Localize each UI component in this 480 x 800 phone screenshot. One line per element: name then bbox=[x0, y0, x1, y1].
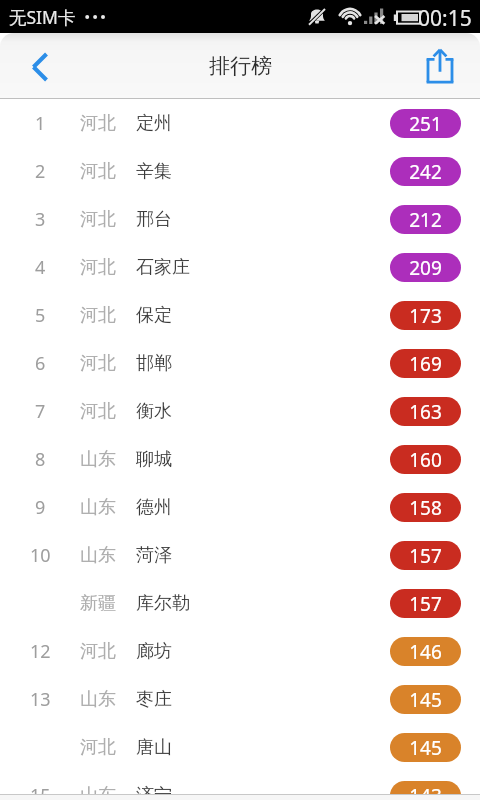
button[interactable]: 2 bbox=[0, 147, 480, 195]
staticText: 邢台 bbox=[136, 208, 172, 231]
staticText: 库尔勒 bbox=[136, 592, 190, 615]
staticText: 廊坊 bbox=[136, 640, 172, 663]
staticText: 6 bbox=[35, 351, 46, 376]
staticText: 定州 bbox=[136, 112, 172, 135]
staticText: 158 bbox=[409, 495, 442, 521]
staticText: 河北 bbox=[80, 736, 116, 759]
staticText: 143 bbox=[409, 783, 442, 800]
staticText: 163 bbox=[409, 399, 442, 425]
staticText: 1 bbox=[35, 111, 46, 136]
staticText: 聊城 bbox=[136, 448, 172, 471]
staticText: 157 bbox=[409, 543, 442, 569]
button[interactable]: 15 bbox=[0, 771, 480, 800]
staticText: 唐山 bbox=[136, 736, 172, 759]
staticText: 169 bbox=[409, 351, 442, 377]
staticText: 160 bbox=[409, 447, 442, 473]
staticText: 00:15 bbox=[418, 4, 472, 33]
staticText: 衡水 bbox=[136, 400, 172, 423]
button[interactable]: 8 bbox=[0, 435, 480, 483]
staticText: 山东 bbox=[80, 448, 116, 471]
staticText: 8 bbox=[35, 447, 46, 472]
staticText: 河北 bbox=[80, 400, 116, 423]
staticText: 新疆 bbox=[80, 592, 116, 615]
button[interactable]: 13 bbox=[0, 675, 480, 723]
staticText: 河北 bbox=[80, 256, 116, 279]
staticText: 5 bbox=[35, 303, 46, 328]
button[interactable]: 河北 bbox=[0, 723, 480, 771]
staticText: 济宁 bbox=[136, 784, 172, 800]
staticText: 242 bbox=[409, 159, 442, 185]
staticText: 河北 bbox=[80, 352, 116, 375]
staticText: 12 bbox=[30, 639, 51, 664]
staticText: 河北 bbox=[80, 208, 116, 231]
staticText: 山东 bbox=[80, 544, 116, 567]
button[interactable]: 7 bbox=[0, 387, 480, 435]
button[interactable]: Share bbox=[400, 33, 480, 99]
staticText: 4 bbox=[35, 255, 46, 280]
staticText: 保定 bbox=[136, 304, 172, 327]
staticText: 河北 bbox=[80, 160, 116, 183]
button[interactable]: 6 bbox=[0, 339, 480, 387]
staticText: 菏泽 bbox=[136, 544, 172, 567]
staticText: 山东 bbox=[80, 496, 116, 519]
staticText: 212 bbox=[409, 207, 442, 233]
staticText: 辛集 bbox=[136, 160, 172, 183]
button[interactable]: 4 bbox=[0, 243, 480, 291]
staticText: 3 bbox=[35, 207, 46, 232]
button[interactable]: 1 bbox=[0, 99, 480, 147]
staticText: 石家庄 bbox=[136, 256, 190, 279]
staticText: 无SIM卡 bbox=[9, 5, 76, 29]
staticText: 河北 bbox=[80, 112, 116, 135]
staticText: 山东 bbox=[80, 688, 116, 711]
staticText: 173 bbox=[409, 303, 442, 329]
staticText: 209 bbox=[409, 255, 442, 281]
button[interactable]: 10 bbox=[0, 531, 480, 579]
staticText: 德州 bbox=[136, 496, 172, 519]
button[interactable]: 5 bbox=[0, 291, 480, 339]
button[interactable]: 3 bbox=[0, 195, 480, 243]
staticText: 7 bbox=[35, 399, 46, 424]
staticText: 145 bbox=[409, 735, 442, 761]
staticText: 13 bbox=[30, 687, 51, 712]
staticText: 枣庄 bbox=[136, 688, 172, 711]
button[interactable]: 9 bbox=[0, 483, 480, 531]
staticText: 10 bbox=[30, 543, 51, 568]
staticText: 9 bbox=[35, 495, 46, 520]
staticText: 251 bbox=[409, 111, 442, 137]
staticText: 146 bbox=[409, 639, 442, 665]
staticText: 河北 bbox=[80, 304, 116, 327]
staticText: 2 bbox=[35, 159, 46, 184]
staticText: 邯郸 bbox=[136, 352, 172, 375]
staticText: 山东 bbox=[80, 784, 116, 800]
staticText: 145 bbox=[409, 687, 442, 713]
staticText: 157 bbox=[409, 591, 442, 617]
button[interactable]: Back bbox=[0, 33, 80, 99]
staticText: 15 bbox=[30, 783, 51, 800]
button[interactable]: 12 bbox=[0, 627, 480, 675]
staticText: 排行榜 bbox=[209, 53, 272, 79]
button[interactable]: 新疆 bbox=[0, 579, 480, 627]
staticText: 河北 bbox=[80, 640, 116, 663]
